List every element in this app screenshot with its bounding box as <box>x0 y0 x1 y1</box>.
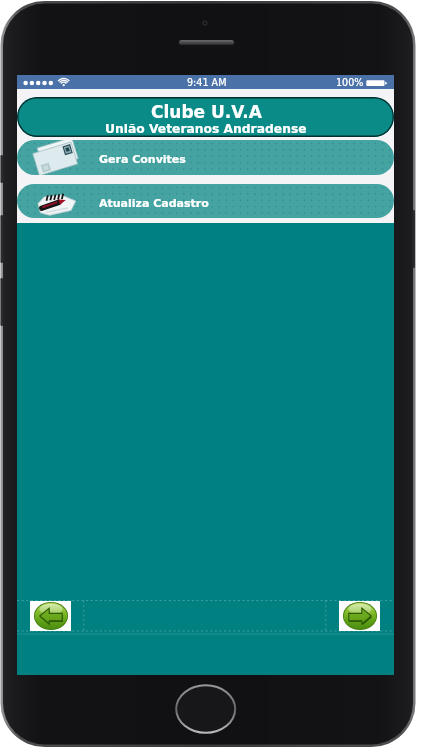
staticText: Atualiza Cadastro <box>99 197 209 210</box>
button[interactable]: Voltar <box>30 601 71 631</box>
button[interactable]: Avançar <box>339 601 380 631</box>
staticText: 100% <box>336 77 364 88</box>
button[interactable]: Gera Convites <box>17 140 394 175</box>
staticText: União Veteranos Andradense <box>105 122 307 136</box>
button[interactable]: Atualiza Cadastro <box>17 184 394 218</box>
button[interactable]: Clube U.V.A <box>17 97 394 137</box>
staticText: Gera Convites <box>99 153 186 166</box>
staticText: Clube U.V.A <box>151 102 262 122</box>
staticText: 9:41 AM <box>187 77 227 88</box>
